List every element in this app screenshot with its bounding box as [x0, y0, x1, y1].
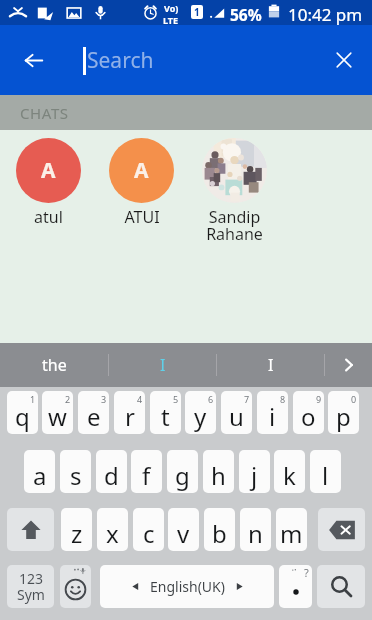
button[interactable]: Backspace: [318, 508, 365, 551]
staticText: g: [175, 459, 190, 492]
staticText: n: [248, 517, 263, 550]
button[interactable]: i: [257, 391, 288, 434]
staticText: h: [211, 459, 226, 492]
button[interactable]: y: [185, 391, 216, 434]
button[interactable]: t: [150, 391, 181, 434]
staticText: the: [42, 354, 67, 376]
button[interactable]: m: [276, 508, 307, 551]
staticText: w: [48, 400, 67, 433]
button[interactable]: n: [240, 508, 271, 551]
staticText: i: [269, 400, 276, 433]
button[interactable]: Emoji: [60, 565, 91, 608]
staticText: r: [125, 400, 135, 433]
staticText: y: [194, 400, 207, 433]
staticText: 56%: [230, 4, 262, 25]
staticText: e: [87, 400, 101, 433]
button[interactable]: Clear search: [322, 25, 366, 95]
button[interactable]: A: [95, 138, 188, 228]
button[interactable]: q: [7, 391, 38, 434]
staticText: LTE: [163, 14, 179, 26]
button[interactable]: j: [239, 450, 270, 493]
staticText: 5: [173, 393, 179, 405]
staticText: s: [70, 459, 82, 492]
button[interactable]: CHATS: [0, 95, 372, 130]
staticText: v: [177, 517, 190, 550]
staticText: 10:42 pm: [288, 3, 363, 26]
button[interactable]: h: [203, 450, 234, 493]
button[interactable]: the: [0, 343, 108, 387]
staticText: Sandip Rahane: [206, 206, 263, 244]
button[interactable]: e: [78, 391, 109, 434]
staticText: ATUI: [124, 206, 160, 228]
staticText: 0: [351, 393, 357, 405]
button[interactable]: b: [204, 508, 235, 551]
staticText: c: [143, 517, 155, 550]
staticText: k: [283, 459, 296, 492]
button[interactable]: w: [42, 391, 73, 434]
staticText: ?: [304, 565, 309, 580]
staticText: I: [160, 354, 166, 376]
staticText: x: [106, 517, 119, 550]
button[interactable]: p: [328, 391, 359, 434]
staticText: A: [41, 156, 56, 185]
staticText: English(UK): [150, 577, 225, 596]
button[interactable]: u: [221, 391, 252, 434]
button[interactable]: v: [168, 508, 199, 551]
staticText: a: [33, 459, 47, 492]
button[interactable]: z: [61, 508, 92, 551]
staticText: 6: [208, 393, 214, 405]
button[interactable]: More suggestions: [325, 343, 372, 387]
button[interactable]: d: [96, 450, 127, 493]
button[interactable]: k: [274, 450, 305, 493]
staticText: 123 Sym: [17, 569, 45, 604]
staticText: l: [322, 459, 329, 492]
staticText: Search: [87, 46, 154, 75]
button[interactable]: 123 Sym: [7, 565, 54, 608]
button[interactable]: a: [24, 450, 55, 493]
staticText: 1: [194, 5, 200, 19]
button[interactable]: Back: [12, 25, 56, 95]
staticText: u: [229, 400, 244, 433]
staticText: 3: [101, 393, 107, 405]
staticText: 7: [244, 393, 250, 405]
staticText: p: [336, 400, 351, 433]
staticText: 1: [30, 393, 36, 405]
button[interactable]: g: [167, 450, 198, 493]
button[interactable]: Period: [279, 565, 312, 608]
staticText: 2: [65, 393, 71, 405]
button[interactable]: o: [293, 391, 324, 434]
staticText: Vo): [164, 2, 179, 14]
button[interactable]: s: [60, 450, 91, 493]
button[interactable]: I: [217, 343, 324, 387]
button[interactable]: Space: [100, 565, 274, 608]
button[interactable]: c: [133, 508, 164, 551]
staticText: t: [161, 400, 170, 433]
staticText: z: [71, 517, 83, 550]
staticText: b: [212, 517, 227, 550]
staticText: j: [251, 459, 258, 492]
button[interactable]: x: [97, 508, 128, 551]
button[interactable]: f: [131, 450, 162, 493]
staticText: 9: [316, 393, 322, 405]
button[interactable]: Search: [317, 565, 365, 608]
button[interactable]: A: [2, 138, 95, 228]
staticText: I: [268, 354, 274, 376]
staticText: A: [134, 156, 149, 185]
staticText: m: [280, 517, 303, 550]
staticText: q: [15, 400, 30, 433]
staticText: atul: [34, 206, 63, 228]
staticText: 8: [280, 393, 286, 405]
button[interactable]: l: [310, 450, 341, 493]
button[interactable]: Shift: [7, 508, 54, 551]
staticText: 4: [137, 393, 143, 405]
button[interactable]: Search: [60, 25, 320, 95]
staticText: f: [142, 459, 151, 492]
staticText: o: [301, 400, 316, 433]
staticText: CHATS: [20, 103, 69, 123]
staticText: d: [104, 459, 119, 492]
button[interactable]: I: [109, 343, 216, 387]
button[interactable]: Sandip Rahane: [188, 138, 281, 244]
button[interactable]: r: [114, 391, 145, 434]
